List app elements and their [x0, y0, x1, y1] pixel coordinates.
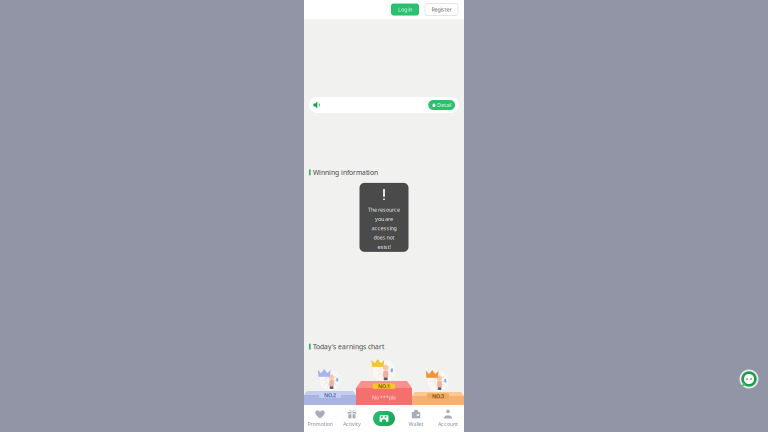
staticText: you are [375, 215, 393, 222]
staticText: Winning information [313, 168, 378, 177]
staticText: Detail [437, 101, 451, 109]
staticText: does not [373, 234, 394, 241]
button[interactable]: Activity [336, 405, 368, 432]
staticText: Today's earnings chart [313, 342, 384, 351]
staticText: accessing [371, 225, 396, 232]
button[interactable]: Games [368, 405, 400, 432]
staticText: No ***ple [372, 394, 396, 401]
button[interactable]: Support chat [737, 367, 761, 391]
button[interactable]: Register [425, 3, 458, 15]
staticText: NO.3 [432, 393, 444, 400]
staticText: Log in [398, 6, 412, 13]
button[interactable]: Promotion [304, 405, 336, 432]
staticText: exist! [377, 243, 390, 250]
button[interactable]: Detail [428, 100, 455, 110]
staticText: NO.2 [324, 392, 336, 399]
staticText: Register [431, 6, 451, 13]
staticText: The resource [368, 206, 400, 213]
staticText: Promotion [307, 420, 332, 428]
staticText: Activity [343, 420, 361, 428]
staticText: Account [438, 420, 458, 428]
staticText: Wallet [408, 420, 423, 428]
button[interactable]: Account [432, 405, 464, 432]
button[interactable]: Log in [391, 3, 419, 15]
button[interactable]: Wallet [400, 405, 432, 432]
staticText: NO.1 [378, 383, 390, 390]
